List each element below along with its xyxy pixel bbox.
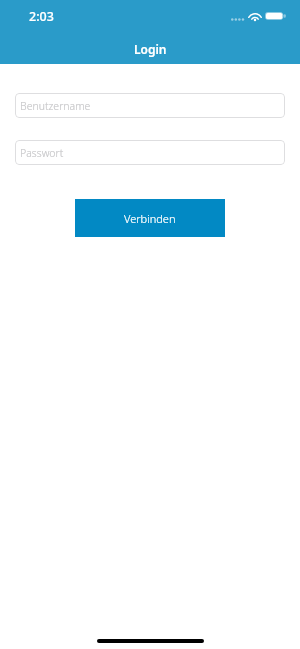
other: Battery full: [265, 12, 284, 20]
other: Wi-Fi: [249, 12, 261, 21]
staticText: Benutzername: [20, 99, 91, 113]
staticText: Verbinden: [124, 211, 176, 226]
button[interactable]: Verbinden: [75, 199, 225, 237]
staticText: Passwort: [20, 146, 64, 160]
staticText: 2:03: [29, 8, 54, 25]
button[interactable]: Benutzername: [15, 93, 285, 118]
button[interactable]: Passwort: [15, 140, 285, 165]
staticText: Login: [134, 41, 167, 57]
other: Cellular signal: [231, 18, 244, 21]
